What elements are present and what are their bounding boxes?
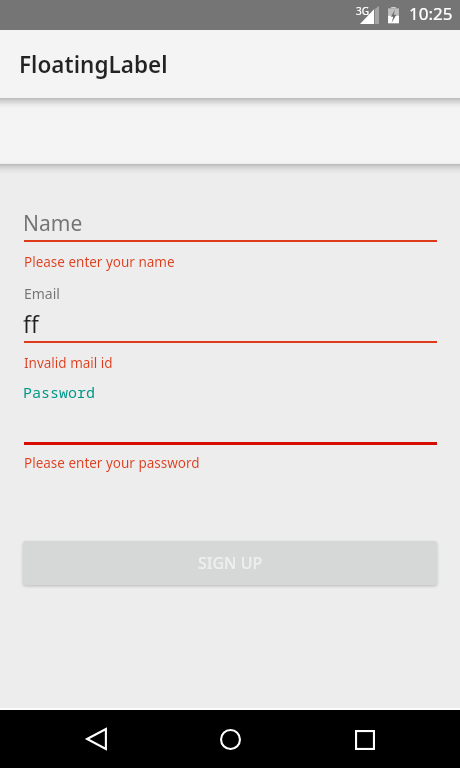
staticText: 10:25 [409,2,453,25]
button[interactable]: Recents [336,711,393,768]
staticText: SIGN UP [198,552,263,574]
button[interactable]: Name input field [24,200,437,245]
button[interactable]: Home [202,711,259,768]
staticText: FloatingLabel [19,49,168,80]
staticText: Name [23,209,83,238]
staticText: Please enter your name [24,253,175,271]
staticText: Password [23,382,96,402]
staticText: ff [23,308,39,339]
button[interactable]: Password input field [24,378,437,445]
button[interactable]: Email input field [24,280,437,343]
staticText: 3G [356,4,369,18]
button[interactable]: Back [68,710,125,767]
staticText: Invalid mail id [24,354,113,372]
staticText: Email [24,284,60,303]
staticText: Please enter your password [24,454,200,472]
